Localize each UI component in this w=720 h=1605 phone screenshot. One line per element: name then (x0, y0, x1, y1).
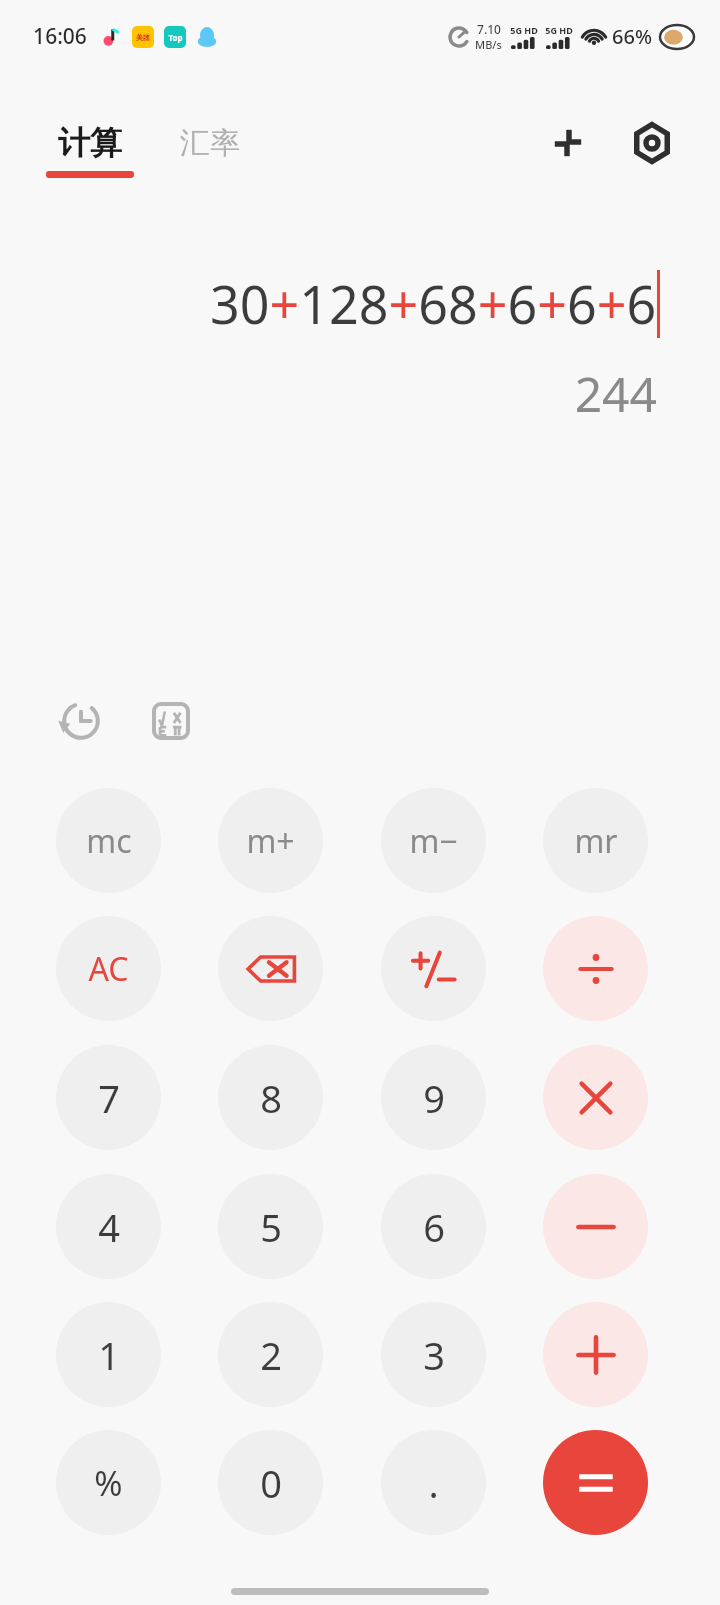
staticText: 9 (423, 1072, 445, 1124)
button[interactable]: 9 (381, 1045, 486, 1150)
staticText: 4 (98, 1201, 120, 1253)
staticText: 3 (423, 1329, 445, 1381)
staticText: 5G HD (545, 24, 573, 36)
button[interactable]: 6 (381, 1174, 486, 1279)
button[interactable]: 1 (56, 1302, 161, 1407)
button[interactable]: Plus (543, 1302, 648, 1407)
button[interactable]: . (381, 1430, 486, 1535)
button[interactable]: AC (56, 916, 161, 1021)
button[interactable]: 汇率 (180, 124, 240, 177)
staticText: MB/s (475, 37, 502, 52)
staticText: 244 (40, 361, 657, 426)
staticText: 2 (260, 1329, 282, 1381)
button[interactable]: 8 (218, 1045, 323, 1150)
staticText: 7 (98, 1072, 120, 1124)
staticText: 美团 (136, 33, 150, 42)
staticText: 汇率 (180, 124, 240, 162)
button[interactable]: Equals (543, 1430, 648, 1535)
button[interactable]: Unit converter (540, 115, 596, 171)
staticText: 66% (612, 23, 652, 50)
button[interactable]: Minus (543, 1174, 648, 1279)
button[interactable]: mc (56, 788, 161, 893)
staticText: 5 (260, 1201, 282, 1253)
button[interactable]: % (56, 1430, 161, 1535)
button[interactable]: mr (543, 788, 648, 893)
staticText: % (94, 1460, 123, 1506)
button[interactable]: Backspace (218, 916, 323, 1021)
staticText: 16:06 (33, 22, 87, 51)
staticText: 7.10 (477, 21, 501, 37)
staticText: 5G HD (510, 24, 538, 36)
button[interactable]: Scientific mode (142, 692, 200, 750)
button[interactable]: 3 (381, 1302, 486, 1407)
button[interactable]: Settings (624, 115, 680, 171)
button[interactable]: 0 (218, 1430, 323, 1535)
staticText: mr (574, 819, 618, 863)
button[interactable]: Divide (543, 916, 648, 1021)
button[interactable]: 计算 (46, 123, 134, 178)
staticText: m+ (246, 819, 295, 863)
button[interactable]: 4 (56, 1174, 161, 1279)
button[interactable]: 7 (56, 1045, 161, 1150)
staticText: m− (409, 819, 458, 863)
button[interactable]: History (52, 692, 110, 750)
button[interactable]: m− (381, 788, 486, 893)
staticText: Top (168, 32, 183, 43)
staticText: 0 (260, 1457, 282, 1509)
button[interactable]: Multiply (543, 1045, 648, 1150)
staticText: AC (88, 947, 129, 991)
button[interactable]: m+ (218, 788, 323, 893)
staticText: mc (86, 819, 132, 863)
staticText: 6 (423, 1201, 445, 1253)
button[interactable]: 5 (218, 1174, 323, 1279)
staticText: 30+128+68+6+6+6 (210, 268, 657, 339)
button[interactable]: Toggle sign (381, 916, 486, 1021)
staticText: 1 (98, 1329, 120, 1381)
staticText: 8 (260, 1072, 282, 1124)
staticText: . (428, 1457, 439, 1509)
button[interactable]: 2 (218, 1302, 323, 1407)
staticText: 计算 (58, 123, 122, 163)
